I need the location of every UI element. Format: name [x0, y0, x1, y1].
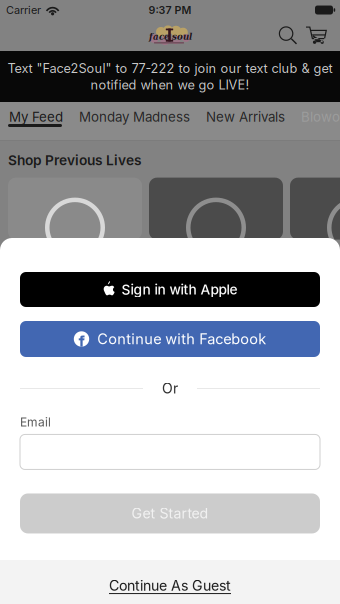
- button[interactable]: Cart: [306, 26, 328, 44]
- staticText: 9:37 PM: [148, 3, 191, 16]
- button[interactable]: Monday Madness: [79, 109, 190, 125]
- button[interactable]: Sign in with Apple: [20, 272, 320, 307]
- button[interactable]: Continue As Guest: [0, 560, 340, 604]
- button[interactable]: Get Started: [20, 493, 320, 533]
- staticText: Email: [20, 415, 51, 429]
- button[interactable]: Search: [278, 25, 298, 45]
- staticText: face: [149, 31, 170, 42]
- button[interactable]: Face2Soul home: [147, 24, 193, 46]
- staticText: Or: [162, 380, 178, 397]
- button[interactable]: Blowo: [301, 109, 340, 125]
- staticText: New Arrivals: [206, 109, 285, 125]
- staticText: notified when we go LIVE!: [90, 77, 249, 92]
- staticText: soul: [172, 31, 192, 42]
- staticText: Continue As Guest: [109, 577, 231, 594]
- staticText: Carrier: [6, 3, 41, 17]
- button[interactable]: Continue with Facebook: [20, 321, 320, 357]
- staticText: Continue with Facebook: [97, 330, 266, 348]
- staticText: My Feed: [9, 109, 63, 125]
- staticText: Text "Face2Soul" to 77-222 to join our t…: [7, 60, 332, 76]
- staticText: Blowo: [301, 109, 340, 125]
- button[interactable]: New Arrivals: [206, 109, 285, 125]
- button[interactable]: My Feed: [9, 109, 63, 125]
- staticText: Get Started: [131, 505, 208, 522]
- staticText: Shop Previous Lives: [8, 152, 142, 169]
- staticText: Monday Madness: [79, 109, 190, 125]
- staticText: Sign in with Apple: [121, 281, 237, 298]
